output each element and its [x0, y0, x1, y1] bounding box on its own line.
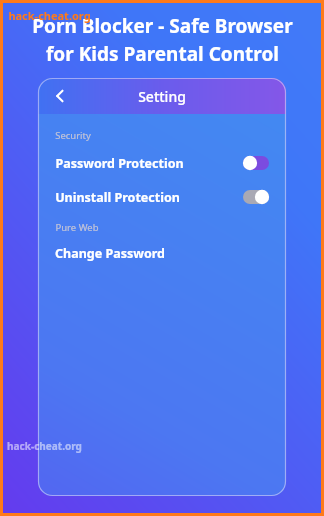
button[interactable]: Back: [46, 82, 74, 110]
staticText: hack-cheat.org: [8, 8, 91, 23]
staticText: Uninstall Protection: [55, 189, 180, 206]
button[interactable]: Change Password: [38, 238, 286, 268]
staticText: Porn Blocker - Safe Browser: [32, 13, 293, 39]
button[interactable]: Uninstall Protection: [38, 180, 286, 214]
staticText: Setting: [138, 87, 186, 106]
staticText: for Kids Parental Control: [46, 41, 279, 67]
staticText: Pure Web: [55, 221, 99, 234]
staticText: Password Protection: [55, 155, 184, 172]
button[interactable]: Off: [243, 156, 269, 170]
button[interactable]: Password Protection: [38, 146, 286, 180]
staticText: Change Password: [55, 245, 165, 262]
staticText: Security: [55, 129, 91, 142]
staticText: hack-cheat.org: [7, 439, 82, 453]
button[interactable]: On: [243, 190, 269, 204]
